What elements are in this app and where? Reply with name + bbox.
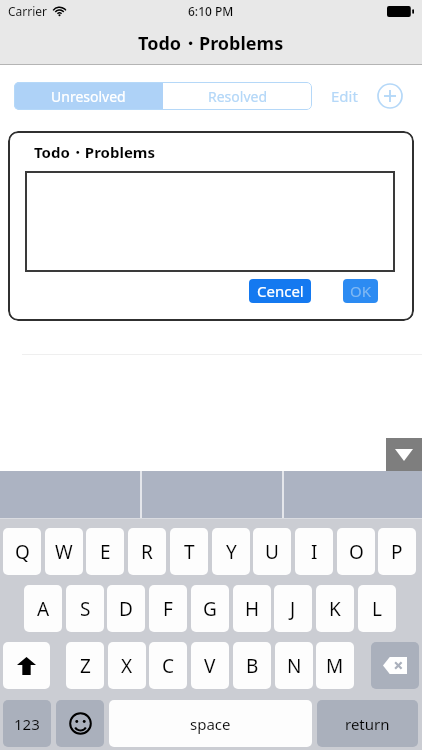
- staticText: Edit: [331, 86, 358, 106]
- button[interactable]: J: [274, 585, 312, 632]
- staticText: D: [119, 596, 133, 622]
- button[interactable]: F: [149, 585, 187, 632]
- staticText: B: [246, 653, 259, 679]
- button[interactable]: Edit: [324, 82, 364, 110]
- button[interactable]: OK: [343, 279, 378, 303]
- staticText: M: [326, 653, 344, 679]
- button[interactable]: Hide keyboard: [386, 438, 422, 472]
- staticText: F: [163, 596, 173, 622]
- staticText: U: [265, 539, 279, 565]
- button[interactable]: Z: [66, 642, 104, 689]
- staticText: space: [190, 714, 231, 734]
- staticText: return: [345, 714, 390, 734]
- staticText: Z: [80, 653, 91, 679]
- button[interactable]: space: [109, 700, 312, 747]
- staticText: V: [204, 653, 216, 679]
- staticText: Q: [15, 539, 30, 565]
- button[interactable]: A: [24, 585, 62, 632]
- staticText: C: [162, 653, 175, 679]
- button[interactable]: M: [316, 642, 354, 689]
- button[interactable]: U: [253, 528, 291, 575]
- staticText: A: [37, 596, 50, 622]
- staticText: 6:10 PM: [188, 3, 234, 19]
- button[interactable]: Shift: [3, 642, 50, 689]
- button[interactable]: Y: [212, 528, 250, 575]
- button[interactable]: L: [358, 585, 396, 632]
- button[interactable]: Backspace: [371, 642, 419, 689]
- button[interactable]: Cencel: [249, 279, 311, 303]
- button[interactable]: S: [66, 585, 104, 632]
- button[interactable]: C: [149, 642, 187, 689]
- button[interactable]: T: [170, 528, 208, 575]
- button[interactable]: Add: [375, 81, 405, 111]
- staticText: Todo・Problems: [138, 31, 284, 56]
- button[interactable]: E: [86, 528, 124, 575]
- button[interactable]: I: [295, 528, 333, 575]
- staticText: Unresolved: [51, 87, 126, 106]
- staticText: Carrier: [8, 3, 48, 19]
- staticText: H: [245, 596, 260, 622]
- button[interactable]: R: [128, 528, 166, 575]
- staticText: Todo・Problems: [34, 142, 155, 162]
- button[interactable]: B: [233, 642, 271, 689]
- staticText: K: [329, 596, 341, 622]
- staticText: X: [121, 653, 133, 679]
- button[interactable]: V: [191, 642, 229, 689]
- button[interactable]: H: [233, 585, 271, 632]
- button[interactable]: Unresolved: [14, 82, 163, 110]
- button[interactable]: N: [275, 642, 313, 689]
- staticText: S: [80, 596, 91, 622]
- button[interactable]: D: [107, 585, 145, 632]
- button[interactable]: 123: [3, 700, 51, 747]
- staticText: 123: [14, 714, 40, 734]
- button[interactable]: W: [45, 528, 83, 575]
- button[interactable]: Emoji: [56, 700, 104, 747]
- button[interactable]: O: [337, 528, 375, 575]
- staticText: Resolved: [208, 87, 268, 106]
- button[interactable]: Resolved: [163, 82, 312, 110]
- button[interactable]: P: [378, 528, 416, 575]
- staticText: Cencel: [257, 281, 304, 301]
- button[interactable]: G: [191, 585, 229, 632]
- button[interactable]: [25, 171, 395, 272]
- button[interactable]: K: [316, 585, 354, 632]
- staticText: P: [391, 539, 403, 565]
- staticText: OK: [350, 281, 372, 301]
- staticText: O: [349, 539, 364, 565]
- staticText: E: [100, 539, 111, 565]
- staticText: L: [372, 596, 382, 622]
- button[interactable]: X: [108, 642, 146, 689]
- button[interactable]: Q: [3, 528, 41, 575]
- staticText: G: [203, 596, 217, 622]
- staticText: N: [287, 653, 302, 679]
- button[interactable]: return: [317, 700, 418, 747]
- staticText: J: [290, 596, 296, 622]
- staticText: T: [184, 539, 195, 565]
- staticText: W: [55, 539, 73, 565]
- staticText: R: [141, 539, 153, 565]
- staticText: Y: [226, 539, 237, 565]
- staticText: I: [311, 539, 318, 565]
